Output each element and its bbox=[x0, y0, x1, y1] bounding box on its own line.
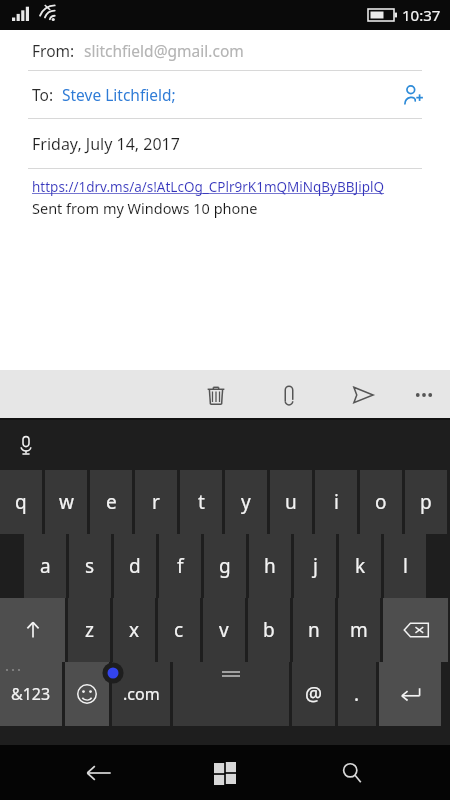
button[interactable] bbox=[173, 662, 289, 726]
staticText: q bbox=[15, 489, 27, 515]
staticText: o bbox=[375, 489, 387, 515]
staticText: r bbox=[152, 489, 160, 515]
staticText: f bbox=[177, 553, 184, 579]
button[interactable]: e bbox=[90, 470, 132, 534]
button[interactable]: n bbox=[293, 598, 335, 662]
button[interactable]: k bbox=[339, 534, 381, 598]
button[interactable]: Back bbox=[71, 745, 127, 800]
button[interactable]: Send bbox=[339, 371, 387, 419]
button[interactable]: d bbox=[114, 534, 156, 598]
staticText: a bbox=[40, 553, 51, 579]
button[interactable]: z bbox=[68, 598, 110, 662]
button[interactable]: Start bbox=[197, 745, 253, 800]
staticText: z bbox=[85, 617, 94, 643]
staticText: e bbox=[106, 489, 117, 515]
button[interactable]: o bbox=[360, 470, 402, 534]
staticText: j bbox=[313, 553, 318, 579]
button[interactable]: y bbox=[225, 470, 267, 534]
staticText: w bbox=[59, 489, 74, 515]
staticText: s bbox=[85, 553, 95, 579]
button[interactable]: t bbox=[180, 470, 222, 534]
staticText: @ bbox=[305, 681, 323, 707]
button[interactable]: Key bbox=[65, 662, 109, 726]
button[interactable]: x bbox=[113, 598, 155, 662]
button[interactable]: Search bbox=[324, 745, 380, 800]
button[interactable]: Key bbox=[379, 662, 441, 726]
staticText: g bbox=[219, 553, 231, 579]
staticText: slitchfield@gmail.com bbox=[84, 40, 244, 61]
button[interactable]: h bbox=[249, 534, 291, 598]
button[interactable]: v bbox=[203, 598, 245, 662]
staticText: Friday, July 14, 2017 bbox=[32, 133, 180, 155]
button[interactable]: l bbox=[384, 534, 426, 598]
button[interactable]: j bbox=[294, 534, 336, 598]
button[interactable]: r bbox=[135, 470, 177, 534]
button[interactable]: Attach bbox=[265, 371, 313, 419]
staticText: To: bbox=[32, 84, 54, 105]
staticText: 10:37 bbox=[402, 5, 441, 25]
button[interactable]: w bbox=[45, 470, 87, 534]
staticText: d bbox=[129, 553, 141, 579]
button[interactable]: https://1drv.ms/a/s!AtLcOg_CPlr9rK1mQMiN… bbox=[32, 178, 450, 218]
button[interactable]: c bbox=[158, 598, 200, 662]
button[interactable]: Key bbox=[383, 598, 448, 662]
staticText: y bbox=[241, 489, 251, 515]
button[interactable]: q bbox=[0, 470, 42, 534]
button[interactable]: Key bbox=[0, 598, 65, 662]
button[interactable]: Friday, July 14, 2017 bbox=[0, 119, 450, 168]
staticText: i bbox=[334, 489, 339, 515]
button[interactable]: p bbox=[405, 470, 447, 534]
staticText: h bbox=[264, 553, 276, 579]
staticText: n bbox=[308, 617, 320, 643]
button[interactable]: More options bbox=[400, 371, 448, 419]
button[interactable]: From: bbox=[0, 30, 450, 70]
staticText: u bbox=[285, 489, 297, 515]
button[interactable]: .com bbox=[112, 662, 170, 726]
staticText: t bbox=[198, 489, 205, 515]
staticText: . bbox=[354, 681, 360, 707]
staticText: x bbox=[129, 617, 140, 643]
button[interactable]: Add contact bbox=[396, 78, 430, 112]
staticText: c bbox=[174, 617, 184, 643]
button[interactable]: m bbox=[338, 598, 380, 662]
staticText: From: bbox=[32, 40, 75, 61]
button[interactable]: s bbox=[69, 534, 111, 598]
staticText: l bbox=[403, 553, 408, 579]
staticText: k bbox=[355, 553, 366, 579]
button[interactable]: a bbox=[24, 534, 66, 598]
button[interactable]: i bbox=[315, 470, 357, 534]
button[interactable]: Voice input bbox=[6, 425, 46, 465]
button[interactable]: f bbox=[159, 534, 201, 598]
button[interactable]: To: bbox=[32, 71, 450, 118]
button[interactable]: b bbox=[248, 598, 290, 662]
staticText: https://1drv.ms/a/s!AtLcOg_CPlr9rK1mQMiN… bbox=[32, 178, 385, 196]
staticText: .com bbox=[123, 683, 160, 705]
staticText: Steve Litchfield; bbox=[62, 84, 176, 105]
button[interactable]: Delete bbox=[192, 371, 240, 419]
staticText: m bbox=[350, 617, 368, 643]
button[interactable]: u bbox=[270, 470, 312, 534]
button[interactable]: . bbox=[338, 662, 376, 726]
button[interactable]: g bbox=[204, 534, 246, 598]
staticText: &123 bbox=[11, 683, 51, 705]
button[interactable]: @ bbox=[292, 662, 335, 726]
staticText: v bbox=[219, 617, 229, 643]
staticText: b bbox=[263, 617, 275, 643]
button[interactable]: Key bbox=[0, 662, 62, 726]
staticText: p bbox=[420, 489, 432, 515]
staticText: Sent from my Windows 10 phone bbox=[32, 198, 258, 218]
